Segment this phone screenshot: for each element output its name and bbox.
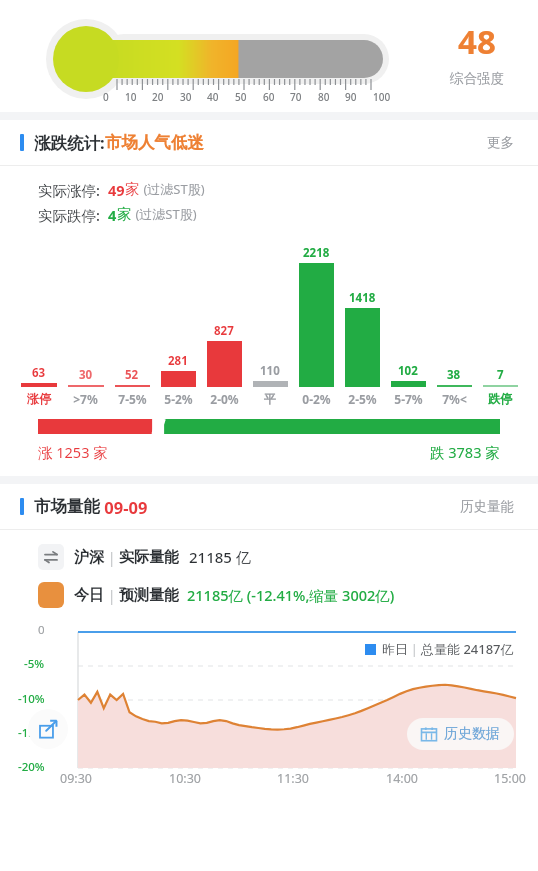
staticText: 2-0% <box>210 391 239 407</box>
staticText: 0 <box>38 622 45 638</box>
staticText: 综合强度 <box>450 70 504 87</box>
button[interactable]: 切换市场 <box>38 544 538 570</box>
staticText: 14:00 <box>386 770 418 787</box>
staticText: 市场人气低迷 <box>105 132 204 153</box>
staticText: 827 <box>214 323 234 339</box>
staticText: | <box>104 586 119 605</box>
staticText: 50 <box>235 90 247 104</box>
staticText: 2218 <box>303 245 330 261</box>
staticText: 总量能 24187亿 <box>421 640 514 658</box>
staticText: -10% <box>18 691 45 707</box>
staticText: 今日 <box>74 586 104 605</box>
staticText: 历史量能 <box>460 498 514 515</box>
staticText: 52 <box>125 367 139 383</box>
staticText: 实际跌停: <box>38 205 100 225</box>
staticText: 7 <box>497 367 504 383</box>
staticText: 21185亿 (-12.41%,缩量 3002亿) <box>187 585 395 605</box>
staticText: 实际涨停: <box>38 180 100 200</box>
staticText: 10:30 <box>169 770 201 787</box>
staticText: 38 <box>447 367 461 383</box>
staticText: 实际量能 <box>119 548 179 567</box>
staticText: 5-7% <box>394 391 423 407</box>
staticText: 30 <box>79 367 93 383</box>
staticText: 7%< <box>442 391 467 407</box>
staticText: 48 <box>458 19 496 64</box>
staticText: 历史数据 <box>444 725 500 743</box>
staticText: 90 <box>345 90 357 104</box>
staticText: 昨日 <box>382 641 408 657</box>
staticText: 0-2% <box>302 391 331 407</box>
staticText: 市场量能 <box>34 496 100 517</box>
staticText: 5-2% <box>164 391 193 407</box>
staticText: 15:00 <box>494 770 526 787</box>
staticText: 11:30 <box>277 770 309 787</box>
staticText: (过滤ST股) <box>140 180 205 198</box>
staticText: 平 <box>264 391 276 406</box>
staticText: 09:30 <box>60 770 92 787</box>
staticText: 60 <box>263 90 275 104</box>
staticText: 涨跌统计: <box>34 131 105 154</box>
staticText: 100 <box>373 90 391 104</box>
staticText: (过滤ST股) <box>132 205 197 223</box>
staticText: 2-5% <box>348 391 377 407</box>
button[interactable]: 历史量能 <box>456 494 518 519</box>
staticText: 4 <box>108 205 117 225</box>
staticText: 49 <box>108 180 125 200</box>
staticText: | <box>104 548 119 567</box>
staticText: 63 <box>32 365 46 381</box>
staticText: 沪深 <box>74 548 104 567</box>
staticText: 涨 1253 家 <box>38 442 108 462</box>
staticText: -20% <box>18 759 45 775</box>
staticText: 预测量能 <box>119 586 179 605</box>
staticText: 80 <box>318 90 330 104</box>
staticText: 21185 亿 <box>189 547 251 567</box>
staticText: 跌 3783 家 <box>430 442 500 462</box>
staticText: 1418 <box>349 290 376 306</box>
button[interactable]: 更多 <box>483 130 518 155</box>
staticText: 家 <box>125 180 140 198</box>
staticText: 跌停 <box>488 391 512 406</box>
staticText: 102 <box>398 363 418 379</box>
staticText: 更多 <box>487 134 514 151</box>
staticText: 10 <box>125 90 137 104</box>
staticText: | <box>408 641 421 657</box>
staticText: 110 <box>260 363 280 379</box>
staticText: 7-5% <box>118 391 147 407</box>
staticText: -5% <box>24 656 45 672</box>
staticText: 281 <box>168 353 188 369</box>
staticText: 30 <box>180 90 192 104</box>
staticText: >7% <box>73 391 98 407</box>
button[interactable]: 分享 <box>28 709 68 749</box>
staticText: 0 <box>103 90 109 104</box>
staticText: 家 <box>117 205 132 223</box>
staticText: 20 <box>152 90 164 104</box>
staticText: -15% <box>18 725 45 741</box>
staticText: 40 <box>207 90 219 104</box>
other: 切换市场 <box>38 544 64 570</box>
staticText: 70 <box>290 90 302 104</box>
staticText: 09-09 <box>100 496 148 518</box>
button[interactable]: 历史数据 <box>407 718 514 750</box>
staticText: 涨停 <box>27 391 51 406</box>
